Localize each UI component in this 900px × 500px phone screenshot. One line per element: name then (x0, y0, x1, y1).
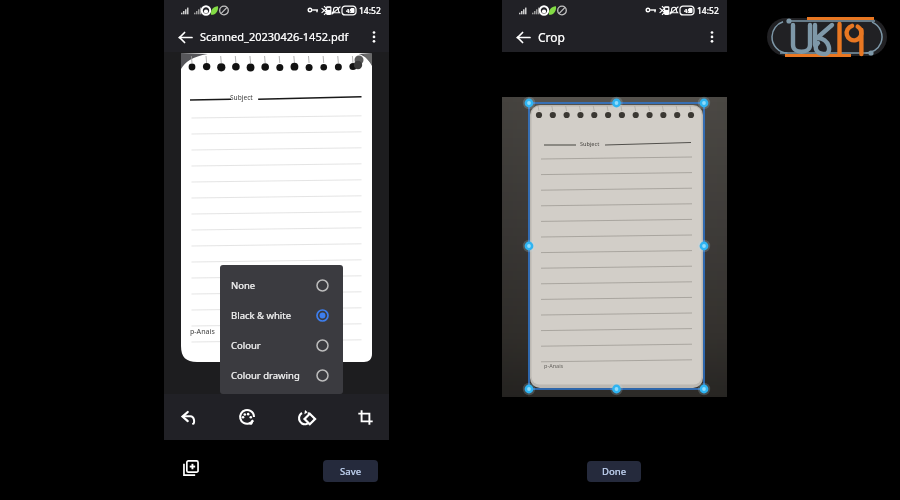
button[interactable]: Filters (230, 400, 264, 434)
staticText: p-Anais (544, 362, 564, 369)
button[interactable]: Add page (178, 455, 204, 481)
button[interactable]: Rotate (289, 400, 323, 434)
button[interactable]: Back (512, 26, 534, 48)
button[interactable]: Colour (220, 330, 343, 360)
staticText: Subject (230, 93, 253, 102)
staticText: None (231, 279, 316, 292)
button[interactable]: More options (701, 26, 723, 48)
button[interactable]: Save (323, 460, 378, 482)
staticText: 45 (684, 7, 691, 15)
staticText: Save (340, 465, 362, 478)
staticText: Subject (580, 140, 600, 147)
staticText: 45 (346, 7, 353, 15)
staticText: Black & white (231, 309, 316, 322)
button[interactable]: Black & white (220, 300, 343, 330)
button[interactable]: Done (587, 461, 641, 482)
button[interactable]: More options (363, 26, 385, 48)
button[interactable]: UR19 logo (767, 10, 887, 56)
button[interactable]: Undo (171, 400, 205, 434)
button[interactable]: Back (174, 26, 196, 48)
staticText: Colour drawing (231, 369, 316, 382)
staticText: p-Anais (190, 327, 215, 337)
staticText: Scanned_20230426-1452.pdf (200, 29, 349, 44)
staticText: 14:52 (697, 5, 719, 17)
staticText: 14:52 (359, 5, 381, 17)
button[interactable]: Crop (348, 400, 382, 434)
staticText: Done (602, 465, 627, 478)
staticText: Crop (538, 29, 565, 45)
staticText: Colour (231, 339, 316, 352)
button[interactable]: Colour drawing (220, 360, 343, 390)
button[interactable]: None (220, 270, 343, 300)
